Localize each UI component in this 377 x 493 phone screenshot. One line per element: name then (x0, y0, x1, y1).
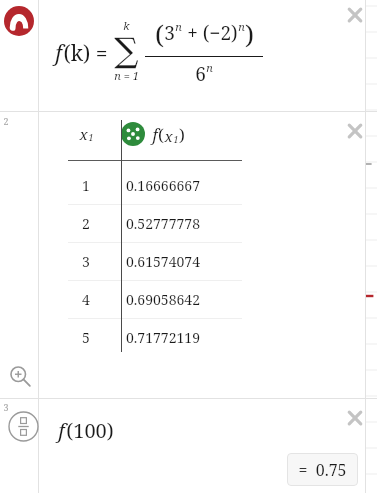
staticText: 0.71772119 (126, 328, 200, 347)
button[interactable]: Delete row (343, 406, 367, 430)
staticText: ( (158, 123, 164, 146)
staticText: 1 (88, 131, 94, 143)
staticText: ( (155, 16, 164, 51)
staticText: f (152, 124, 158, 146)
staticText: 3 (164, 20, 175, 46)
staticText: 3 (82, 252, 90, 271)
staticText: 0.16666667 (126, 176, 200, 195)
staticText: 1 (82, 176, 90, 195)
staticText: (100) (66, 417, 114, 444)
staticText: ∑ (114, 30, 139, 70)
staticText: x (164, 126, 173, 146)
staticText: n = 1 (114, 68, 139, 83)
staticText: 3 (3, 401, 9, 413)
staticText: n (175, 19, 182, 34)
staticText: n (206, 60, 213, 75)
other: App logo (4, 6, 34, 36)
staticText: 4 (82, 290, 90, 309)
button[interactable]: Delete row (343, 119, 367, 143)
staticText: n (238, 19, 245, 34)
staticText: (k) = (63, 39, 108, 68)
staticText: 6 (195, 61, 206, 87)
staticText: ) (179, 123, 185, 146)
staticText: f (58, 417, 65, 444)
button[interactable]: Input type (8, 411, 39, 442)
staticText: ) (245, 16, 254, 51)
button[interactable]: = 0.75 (287, 453, 358, 486)
staticText: 5 (82, 328, 90, 347)
staticText: x (79, 124, 88, 144)
staticText: 0.61574074 (126, 252, 200, 271)
staticText: 2 (82, 214, 90, 233)
staticText: 0.69058642 (126, 290, 200, 309)
staticText: = 0.75 (298, 459, 347, 481)
staticText: 2 (3, 115, 9, 127)
staticText: f (55, 39, 62, 68)
staticText: 1 (173, 133, 179, 145)
staticText: k (123, 18, 130, 33)
staticText: + (−2) (182, 20, 238, 46)
button[interactable]: Zoom to fit (9, 365, 31, 387)
staticText: 0.52777778 (126, 214, 200, 233)
button[interactable]: Delete row (343, 3, 367, 27)
